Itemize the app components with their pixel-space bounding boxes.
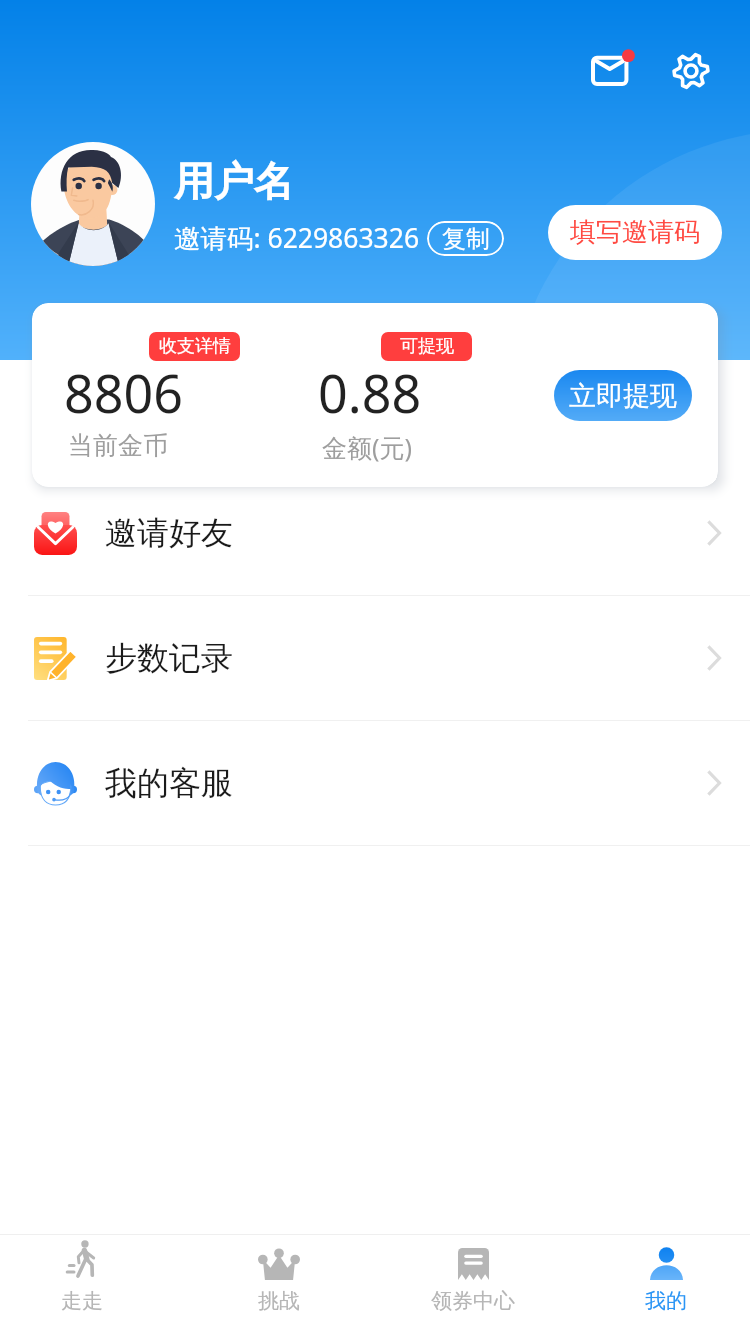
button[interactable]: 可提现 xyxy=(381,332,472,361)
staticText: 用户名 xyxy=(174,156,294,206)
staticText: 金额(元) xyxy=(322,430,413,464)
staticText: 收支详情 xyxy=(159,335,231,358)
button[interactable]: 领券中心 xyxy=(408,1235,538,1334)
staticText: 填写邀请码 xyxy=(570,216,700,249)
staticText: 领券中心 xyxy=(431,1288,515,1314)
staticText: 挑战 xyxy=(258,1288,300,1314)
staticText: 8806 xyxy=(64,357,183,417)
button[interactable]: Avatar xyxy=(31,142,155,266)
staticText: 当前金币 xyxy=(68,430,168,461)
button[interactable]: 挑战 xyxy=(214,1235,344,1334)
staticText: 0.88 xyxy=(318,357,422,417)
button[interactable]: 立即提现 xyxy=(554,370,692,421)
staticText: 复制 xyxy=(442,224,490,254)
staticText: 邀请好友 xyxy=(105,513,233,553)
button[interactable]: 收支详情 xyxy=(149,332,240,361)
staticText: 步数记录 xyxy=(105,638,233,678)
button[interactable]: 邀请好友 xyxy=(0,471,750,595)
staticText: 走走 xyxy=(61,1288,103,1314)
staticText: 立即提现 xyxy=(569,379,677,413)
button[interactable]: 走走 xyxy=(17,1235,147,1334)
staticText: 我的客服 xyxy=(105,763,233,803)
staticText: 邀请码: 6229863326 xyxy=(174,220,420,256)
staticText: 我的 xyxy=(645,1288,687,1314)
button[interactable]: 我的客服 xyxy=(0,721,750,845)
button[interactable]: 我的 xyxy=(601,1235,731,1334)
button[interactable]: 步数记录 xyxy=(0,596,750,720)
button[interactable]: Messages xyxy=(577,42,653,94)
staticText: 可提现 xyxy=(400,335,454,358)
button[interactable]: Settings xyxy=(653,42,729,94)
button[interactable]: 填写邀请码 xyxy=(548,205,722,260)
button[interactable]: 复制 xyxy=(427,221,504,256)
